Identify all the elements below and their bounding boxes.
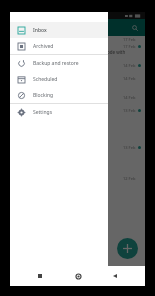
button[interactable]: Settings xyxy=(10,104,108,120)
staticText: 14 Feb xyxy=(123,95,136,100)
button[interactable]: Open navigation drawer xyxy=(15,23,25,33)
button[interactable]: Backup and restore xyxy=(10,55,108,71)
staticText: WhatsApp code 123-456. Do not share this… xyxy=(14,49,126,61)
staticText: Hi! N Wear... xyxy=(14,81,28,93)
button[interactable]: Scheduled xyxy=(10,71,108,87)
staticText: Settings xyxy=(33,109,53,116)
staticText: 17 Feb xyxy=(123,44,136,49)
button[interactable]: Blocking xyxy=(10,87,108,103)
button[interactable]: Home xyxy=(71,269,85,283)
staticText: Archived xyxy=(33,43,54,50)
staticText: SMS Forwarder xyxy=(28,24,72,32)
staticText: Inbox xyxy=(33,27,47,34)
button[interactable]: New message xyxy=(117,238,138,259)
staticText: XXXXXXX9 b xyxy=(14,100,39,106)
staticText: Scheduled xyxy=(33,76,58,83)
button[interactable]: Back xyxy=(108,269,122,283)
staticText: 17 Feb xyxy=(123,37,136,42)
staticText: 13 Feb xyxy=(123,145,136,150)
button[interactable]: Recent apps xyxy=(33,269,47,283)
staticText: 14 Feb xyxy=(123,63,136,68)
staticText: 14 Feb xyxy=(123,76,136,81)
staticText: 13 Feb xyxy=(123,108,136,113)
staticText: Blocking xyxy=(33,92,54,99)
staticText: 30569 99 & get t GB high with Rs. /VSKoj… xyxy=(14,113,34,143)
button[interactable]: Archived xyxy=(10,38,108,54)
button[interactable]: Search xyxy=(130,23,140,33)
button[interactable]: Inbox xyxy=(10,22,108,38)
staticText: 12 Feb xyxy=(123,176,136,181)
staticText: Backup and restore xyxy=(33,60,79,67)
